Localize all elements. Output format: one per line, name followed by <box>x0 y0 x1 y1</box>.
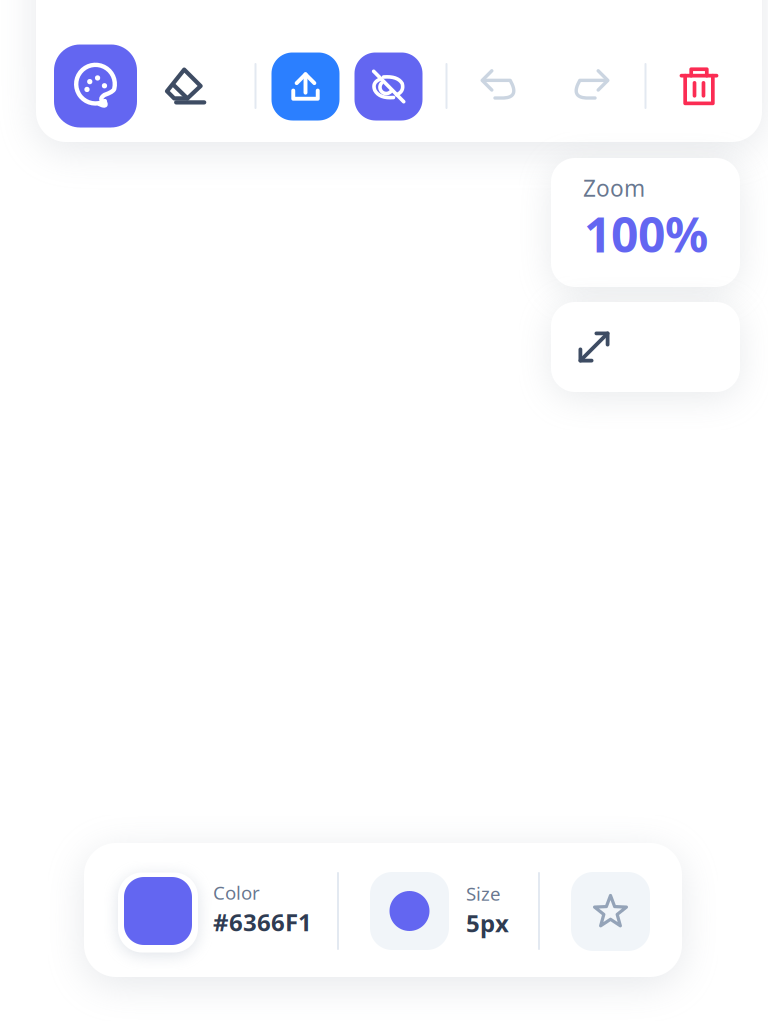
staticText: 5px <box>466 907 509 939</box>
button[interactable]: Color palette <box>54 44 137 127</box>
button[interactable]: Redo <box>561 56 621 116</box>
staticText: Color <box>213 880 260 905</box>
button[interactable]: Favorite <box>571 872 650 951</box>
button[interactable]: Fit to screen <box>551 302 740 392</box>
button[interactable]: Delete all <box>669 56 729 116</box>
staticText: Size <box>466 881 501 906</box>
button[interactable]: Hide drawing <box>354 52 422 120</box>
button[interactable]: Undo <box>469 56 529 116</box>
button[interactable]: Size <box>370 872 520 950</box>
button[interactable]: Color <box>124 877 314 945</box>
staticText: 100% <box>584 202 708 266</box>
staticText: Zoom <box>583 173 645 203</box>
staticText: #6366F1 <box>213 906 312 938</box>
button[interactable]: Eraser <box>154 55 216 117</box>
button[interactable]: Upload <box>271 52 339 120</box>
